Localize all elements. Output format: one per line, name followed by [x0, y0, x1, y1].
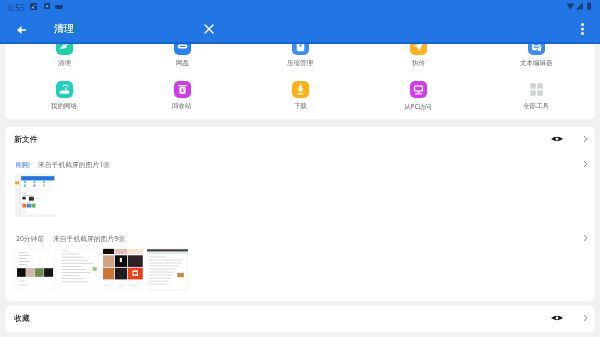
button[interactable]: Back: [7, 16, 35, 44]
button[interactable]: Toggle visibility: [545, 306, 569, 330]
staticText: 网盘: [176, 59, 189, 67]
staticText: 新文件: [14, 134, 38, 144]
staticText: 清理: [54, 22, 74, 35]
button[interactable]: 回收站: [123, 81, 241, 110]
staticText: 从PC访问: [404, 102, 432, 111]
staticText: 文本编辑器: [520, 59, 553, 67]
staticText: 清理: [58, 59, 71, 67]
button[interactable]: 我的网络: [5, 81, 123, 110]
staticText: 回收站: [172, 102, 192, 110]
button[interactable]: 快传: [359, 38, 477, 67]
staticText: 下载: [294, 102, 307, 110]
button[interactable]: 网盘: [123, 38, 241, 67]
button[interactable]: 收藏: [5, 306, 595, 330]
button[interactable]: 下载: [241, 81, 359, 110]
button[interactable]: Toggle visibility: [545, 127, 569, 151]
staticText: 来自手机截屏的图片1张: [38, 160, 110, 169]
staticText: 我的网络: [51, 102, 77, 110]
staticText: 快传: [412, 59, 425, 67]
button[interactable]: Clear text: [195, 15, 223, 43]
staticText: 刚刚: [16, 160, 30, 169]
staticText: 6:55: [8, 2, 25, 14]
button[interactable]: 全部工具: [477, 81, 595, 110]
button[interactable]: More options: [568, 15, 596, 43]
button[interactable]: 刚刚: [5, 153, 595, 227]
button[interactable]: 压缩管理: [241, 38, 359, 67]
button[interactable]: 新文件: [5, 127, 595, 151]
button[interactable]: 文本编辑器: [477, 38, 595, 67]
staticText: 压缩管理: [287, 59, 313, 67]
staticText: 20分钟前: [16, 234, 45, 243]
button[interactable]: 20分钟前: [5, 227, 595, 301]
staticText: 全部工具: [523, 102, 549, 110]
button[interactable]: 从PC访问: [359, 81, 477, 111]
staticText: 来自手机截屏的图片9张: [53, 234, 125, 243]
staticText: 收藏: [14, 313, 30, 323]
button[interactable]: 清理: [5, 38, 123, 67]
